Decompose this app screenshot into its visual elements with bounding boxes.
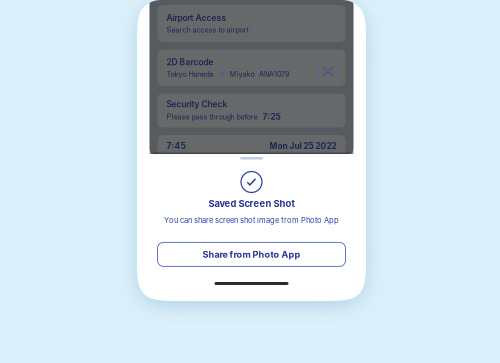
staticText: Search access to airport xyxy=(166,25,248,34)
staticText: Tokyo Haneda xyxy=(166,70,213,78)
staticText: Airport Access xyxy=(166,13,226,23)
staticText: 2D Barcode xyxy=(166,57,213,67)
button[interactable]: Share from Photo App xyxy=(157,242,345,266)
staticText: Share from Photo App xyxy=(202,249,300,260)
staticText: Please pass through before xyxy=(166,112,257,121)
staticText: You can share screen shot image from Pho… xyxy=(164,216,339,225)
staticText: ANA1079 xyxy=(259,70,289,78)
staticText: Security Check xyxy=(166,99,227,109)
staticText: 7:25 xyxy=(262,112,280,122)
staticText: Miyako xyxy=(229,70,254,78)
staticText: Saved Screen Shot xyxy=(208,198,294,209)
staticText: 7:45 xyxy=(166,141,185,151)
staticText: Mon Jul 25 2022 xyxy=(269,141,336,151)
